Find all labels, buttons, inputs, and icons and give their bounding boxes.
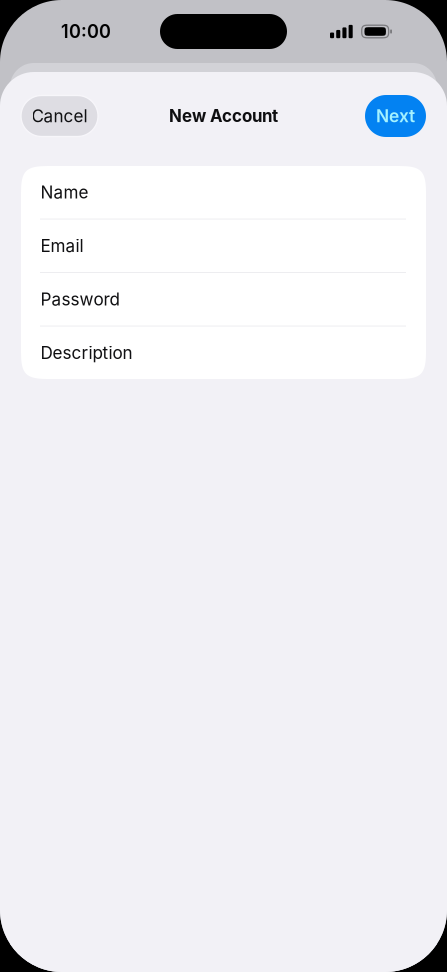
staticText: Description (40, 342, 132, 363)
staticText: Name (40, 182, 88, 202)
button[interactable]: Next (365, 95, 426, 137)
button[interactable]: Password (21, 273, 426, 325)
button[interactable]: Description (21, 326, 426, 379)
staticText: 10:00 (61, 21, 111, 42)
staticText: Cancel (31, 106, 87, 126)
staticText: New Account (169, 106, 278, 126)
button[interactable]: Cancel (21, 95, 98, 136)
staticText: Password (40, 289, 119, 309)
staticText: Next (376, 105, 415, 126)
staticText: Email (40, 235, 83, 256)
button[interactable]: Name (21, 166, 426, 218)
button[interactable]: Email (21, 219, 426, 272)
